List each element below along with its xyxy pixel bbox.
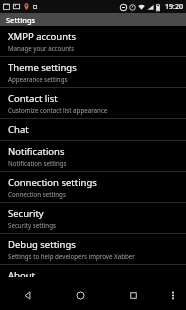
button[interactable]: Back <box>0 281 54 310</box>
staticText: Notification settings <box>8 159 67 167</box>
staticText: Chat <box>8 123 29 136</box>
button[interactable]: Notifications <box>0 141 186 171</box>
staticText: Connection settings <box>8 190 66 198</box>
button[interactable]: Debug settings <box>0 234 186 264</box>
button[interactable]: About <box>0 265 186 281</box>
staticText: Security <box>8 207 44 220</box>
button[interactable]: Chat <box>0 119 186 140</box>
button[interactable]: Contact list <box>0 88 186 118</box>
staticText: 19:20 <box>165 2 183 12</box>
staticText: Debug settings <box>8 238 76 251</box>
staticText: Appearance settings <box>8 75 68 83</box>
button[interactable]: Home <box>54 281 107 310</box>
button[interactable]: More options <box>160 281 186 310</box>
staticText: Connection settings <box>8 176 97 189</box>
button[interactable]: Theme settings <box>0 57 186 87</box>
button[interactable]: Connection settings <box>0 172 186 202</box>
staticText: Notifications <box>8 145 65 158</box>
staticText: Contact list <box>8 92 58 105</box>
staticText: Theme settings <box>8 61 77 74</box>
staticText: XMPP accounts <box>8 30 77 43</box>
button[interactable]: Recent apps <box>107 281 160 310</box>
staticText: Security settings <box>8 221 56 229</box>
staticText: Settings <box>6 15 36 25</box>
button[interactable]: Settings <box>0 13 186 26</box>
staticText: Settings to help developers improve Xabb… <box>8 252 135 260</box>
staticText: About <box>8 269 35 277</box>
button[interactable]: XMPP accounts <box>0 26 186 56</box>
button[interactable]: Security <box>0 203 186 233</box>
staticText: Manage your accounts <box>8 44 75 52</box>
staticText: Customize contact list appearance <box>8 106 108 114</box>
